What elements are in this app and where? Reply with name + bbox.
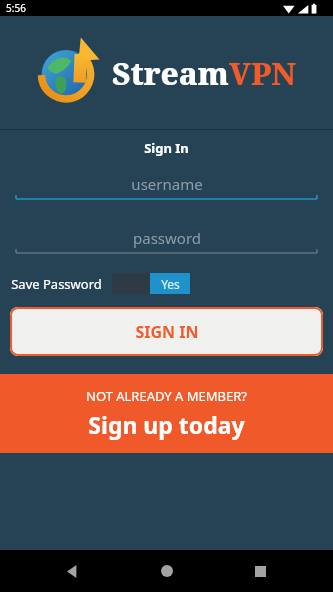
staticText: Sign In <box>144 139 189 157</box>
button[interactable]: Back <box>52 550 94 592</box>
button[interactable]: Recent apps <box>239 550 281 592</box>
staticText: Stream <box>112 52 229 94</box>
button[interactable]: username <box>16 171 317 197</box>
button[interactable]: Yes <box>112 273 190 294</box>
button[interactable]: SIGN IN <box>10 307 323 356</box>
staticText: password <box>133 228 201 248</box>
staticText: NOT ALREADY A MEMBER? <box>86 387 247 405</box>
staticText: username <box>131 174 203 194</box>
staticText: Sign up today <box>88 409 245 440</box>
button[interactable]: NOT ALREADY A MEMBER? <box>0 374 333 453</box>
button[interactable]: Home <box>146 550 188 592</box>
button[interactable]: password <box>16 225 317 251</box>
staticText: Yes <box>161 276 180 292</box>
staticText: 5:56 <box>6 1 26 15</box>
staticText: VPN <box>229 52 296 94</box>
staticText: SIGN IN <box>135 321 199 343</box>
staticText: Save Password <box>11 275 102 293</box>
